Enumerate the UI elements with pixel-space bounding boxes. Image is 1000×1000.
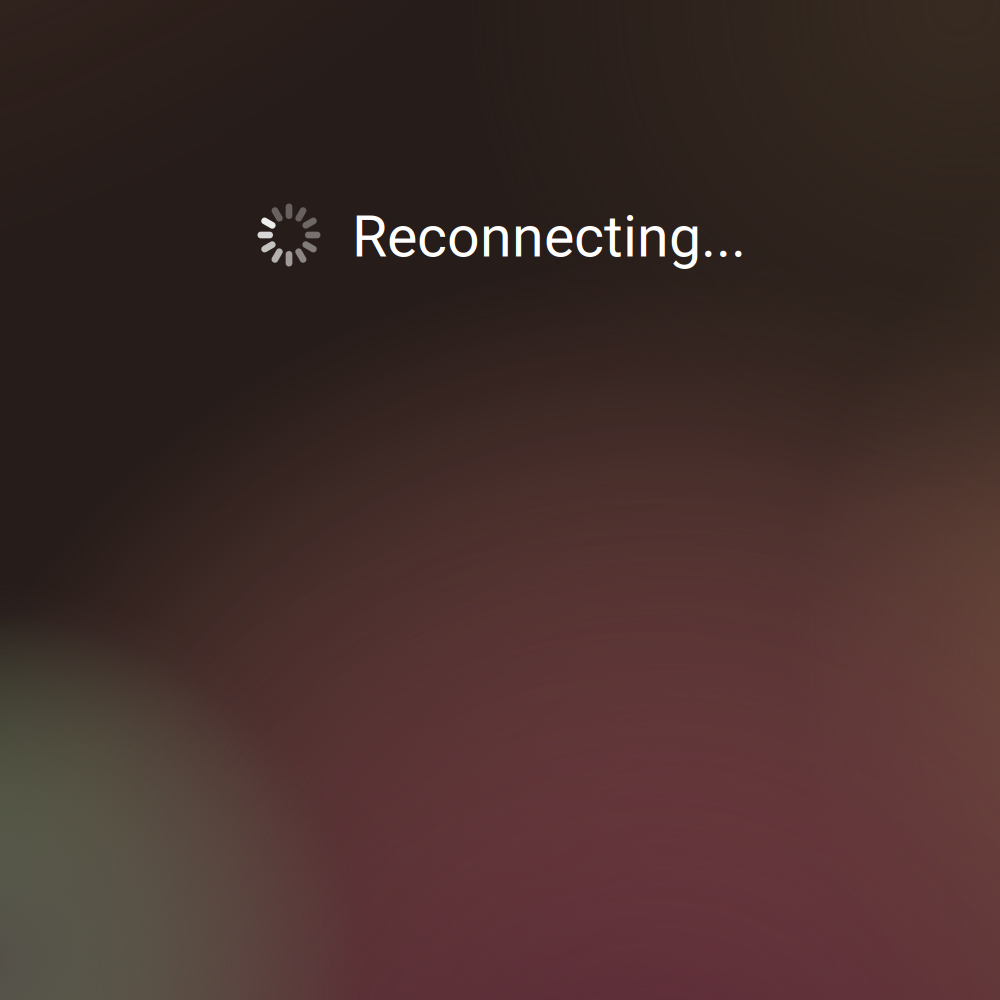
staticText: Reconnecting... xyxy=(352,203,746,271)
